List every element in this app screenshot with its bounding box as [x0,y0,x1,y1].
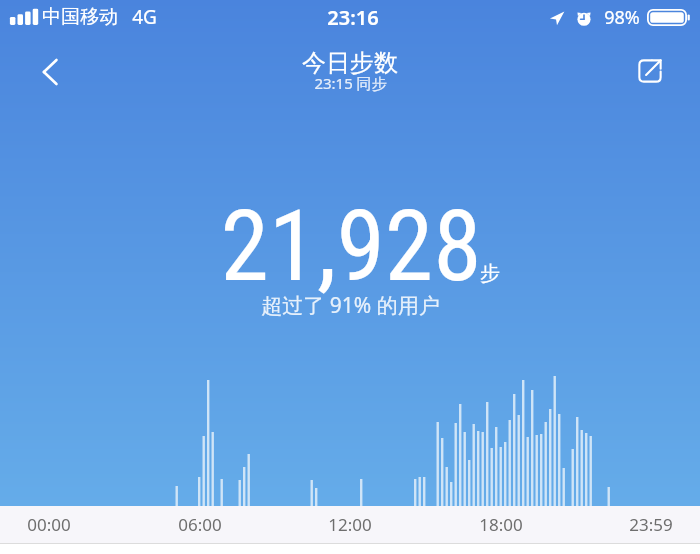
staticText: 23:15 同步 [314,73,387,93]
staticText: 4G [132,4,157,30]
staticText: 今日步数 [302,48,398,78]
staticText: 06:00 [178,513,222,536]
staticText: 00:00 [27,513,71,536]
staticText: 23:16 [327,4,379,31]
staticText: 步 [480,261,500,286]
staticText: 21,928 [220,189,482,304]
staticText: 超过了 91% 的用户 [261,291,440,320]
staticText: 中国移动 [42,5,118,29]
button[interactable]: Back [26,48,74,96]
staticText: 12:00 [328,513,372,536]
staticText: 18:00 [479,513,523,536]
staticText: 23:59 [629,513,673,536]
staticText: 98% [604,5,640,30]
button[interactable]: Share [626,47,674,95]
